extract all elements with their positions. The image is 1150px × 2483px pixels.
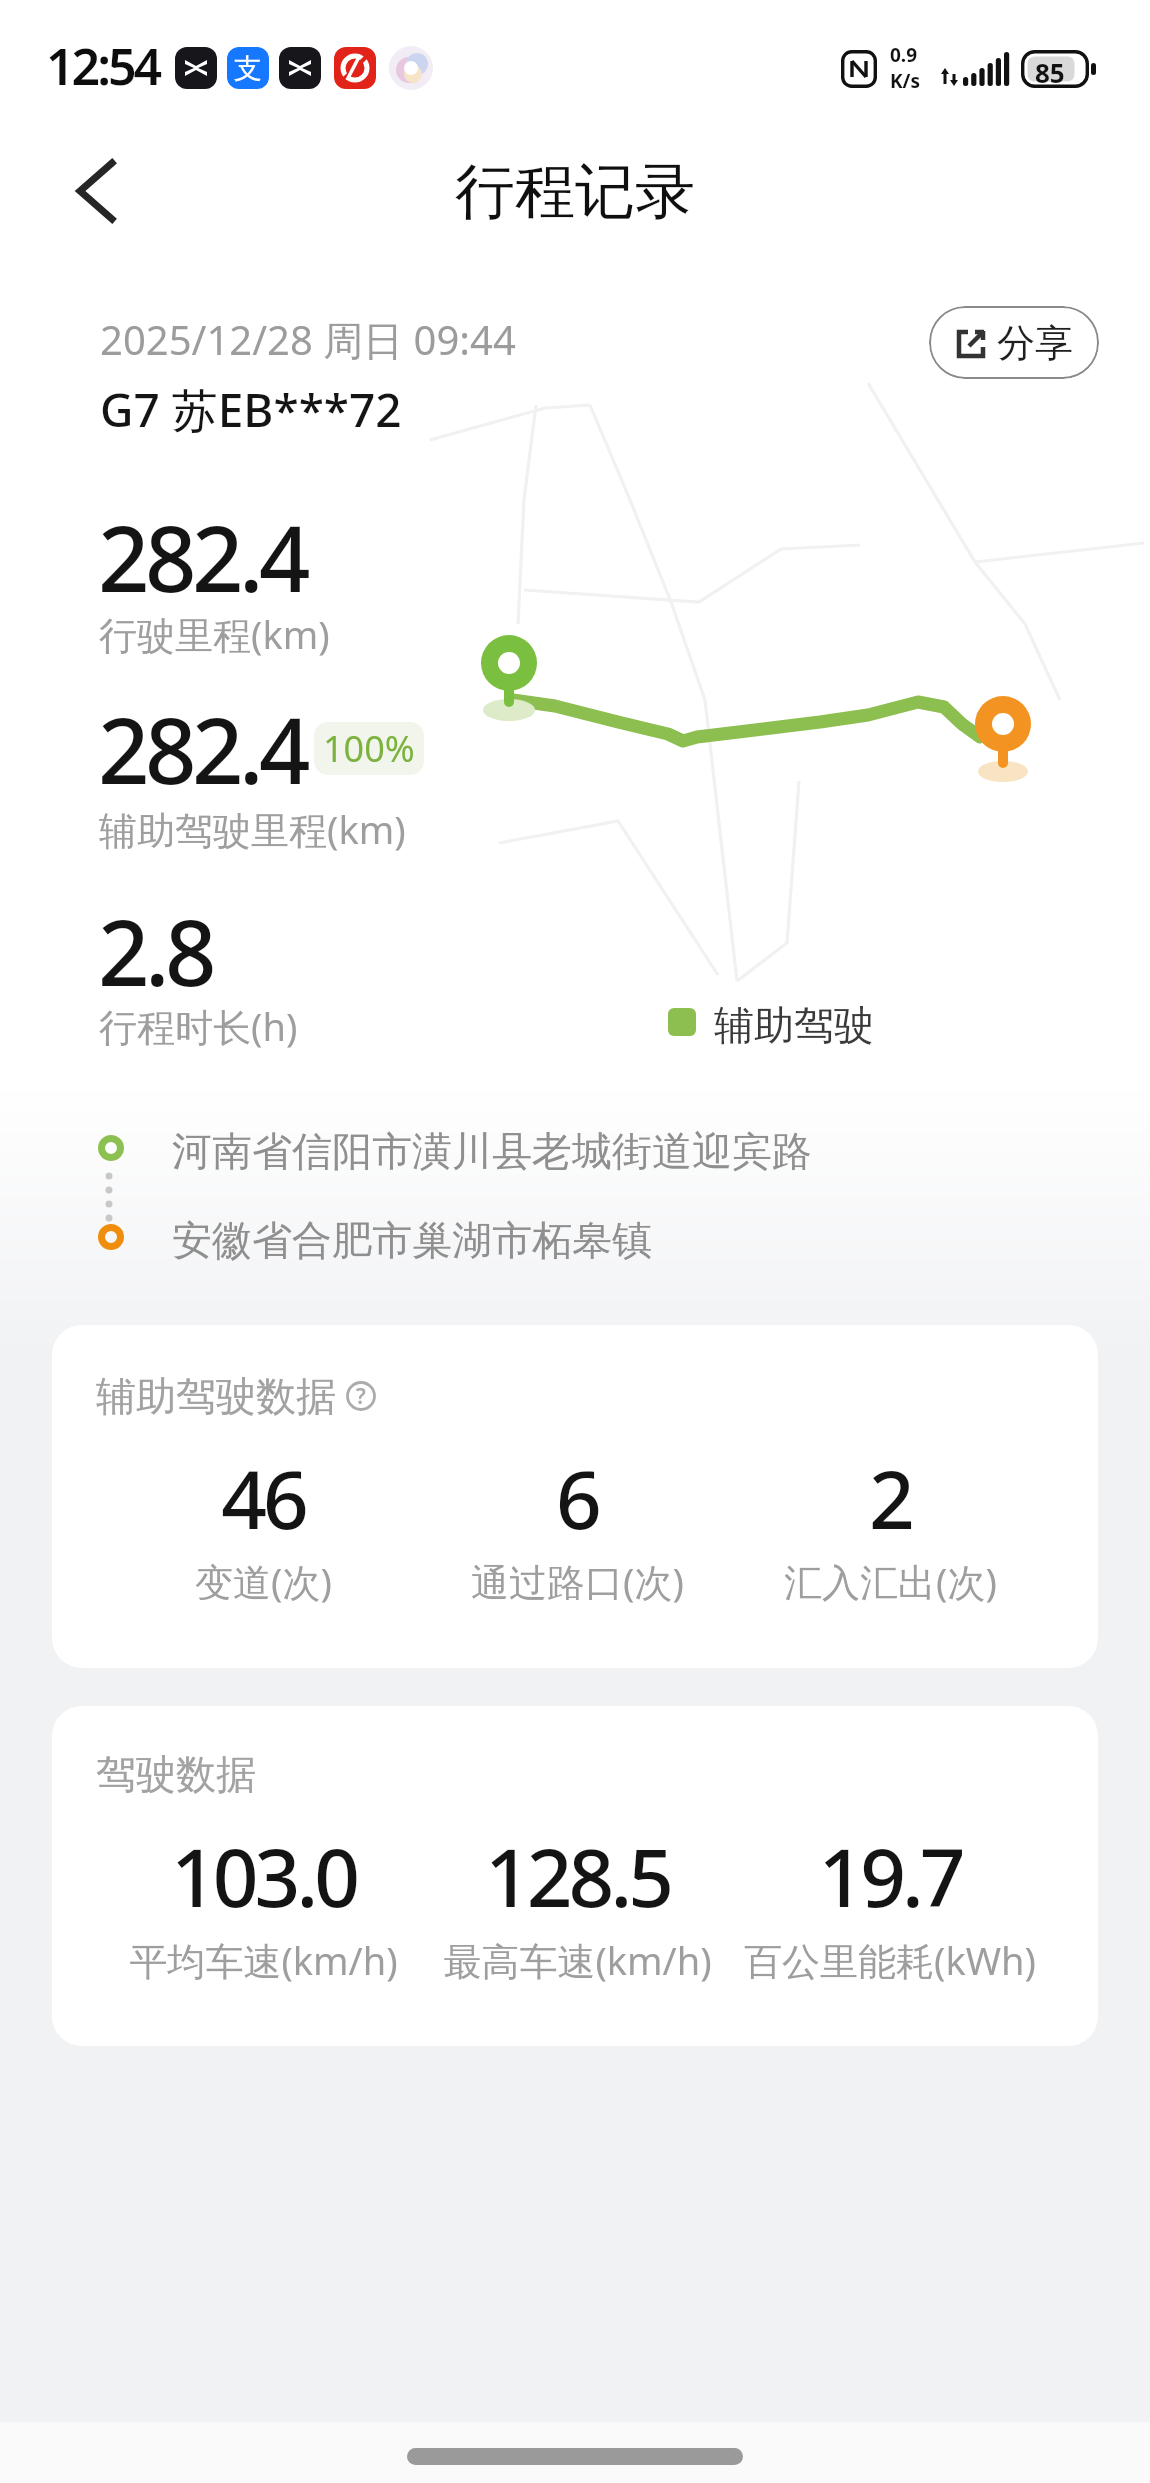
staticText: 平均车速(km/h) [129, 1934, 398, 1986]
staticText: 安徽省合肥市巢湖市柘皋镇 [172, 1215, 652, 1265]
staticText: 行程时长(h) [99, 1000, 298, 1052]
staticText: 128.5 [485, 1821, 670, 1930]
button[interactable]: 分享 [929, 306, 1099, 379]
staticText: 0.9 [890, 42, 918, 68]
staticText: K/s [890, 68, 921, 94]
staticText: 河南省信阳市潢川县老城街道迎宾路 [172, 1126, 812, 1176]
button[interactable]: ? [346, 1381, 376, 1411]
button[interactable] [45, 145, 145, 240]
staticText: 变道(次) [195, 1555, 332, 1607]
staticText: 282.4 [98, 688, 306, 811]
staticText: 辅助驾驶数据 [96, 1371, 336, 1421]
staticText: 2 [869, 1443, 911, 1552]
staticText: 19.7 [818, 1821, 962, 1930]
staticText: 分享 [997, 319, 1073, 367]
staticText: 12:54 [46, 32, 160, 100]
staticText: 2025/12/28 周日 09:44 [100, 312, 516, 367]
staticText: 支 [234, 51, 262, 86]
staticText: 汇入汇出(次) [784, 1555, 997, 1607]
staticText: 103.0 [171, 1821, 356, 1930]
staticText: 通过路口(次) [471, 1555, 684, 1607]
staticText: 辅助驾驶里程(km) [99, 803, 406, 855]
staticText: 2.8 [98, 890, 212, 1013]
staticText: G7 苏EB***72 [100, 378, 402, 441]
staticText: 最高车速(km/h) [443, 1934, 712, 1986]
staticText: ? [356, 1382, 366, 1411]
staticText: 行程记录 [455, 154, 695, 230]
staticText: 85 [1035, 55, 1065, 90]
staticText: 282.4 [98, 496, 306, 619]
staticText: 驾驶数据 [96, 1749, 256, 1799]
staticText: 6 [556, 1443, 598, 1552]
staticText: 100% [323, 724, 415, 773]
staticText: 46 [221, 1443, 305, 1552]
staticText: 行驶里程(km) [99, 608, 330, 660]
staticText: 百公里能耗(kWh) [744, 1934, 1036, 1986]
staticText: 辅助驾驶 [714, 1000, 874, 1050]
